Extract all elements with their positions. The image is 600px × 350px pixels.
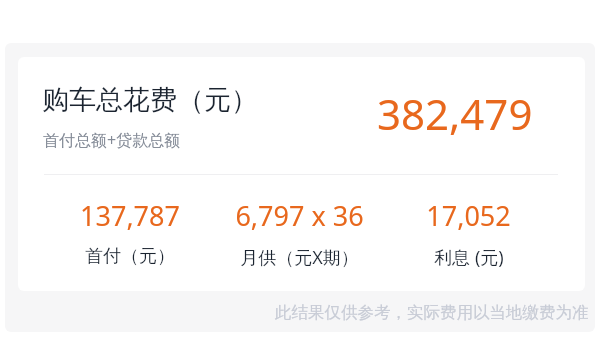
staticText: 17,052 [426,197,511,234]
staticText: 首付总额+贷款总额 [43,129,181,151]
staticText: 月供（元X期） [240,245,359,270]
staticText: 购车总花费（元） [42,83,258,117]
staticText: 利息 (元) [434,245,504,270]
button[interactable]: 137,787 [45,197,215,268]
staticText: 6,797 x 36 [235,197,364,234]
staticText: 首付（元） [85,245,175,268]
button[interactable] [18,57,585,291]
staticText: 137,787 [80,197,180,234]
staticText: 此结果仅供参考，实际费用以当地缴费为准 [275,302,589,323]
button[interactable]: 6,797 x 36 [215,197,384,270]
staticText: 382,479 [377,85,533,142]
button[interactable]: 17,052 [384,197,553,270]
